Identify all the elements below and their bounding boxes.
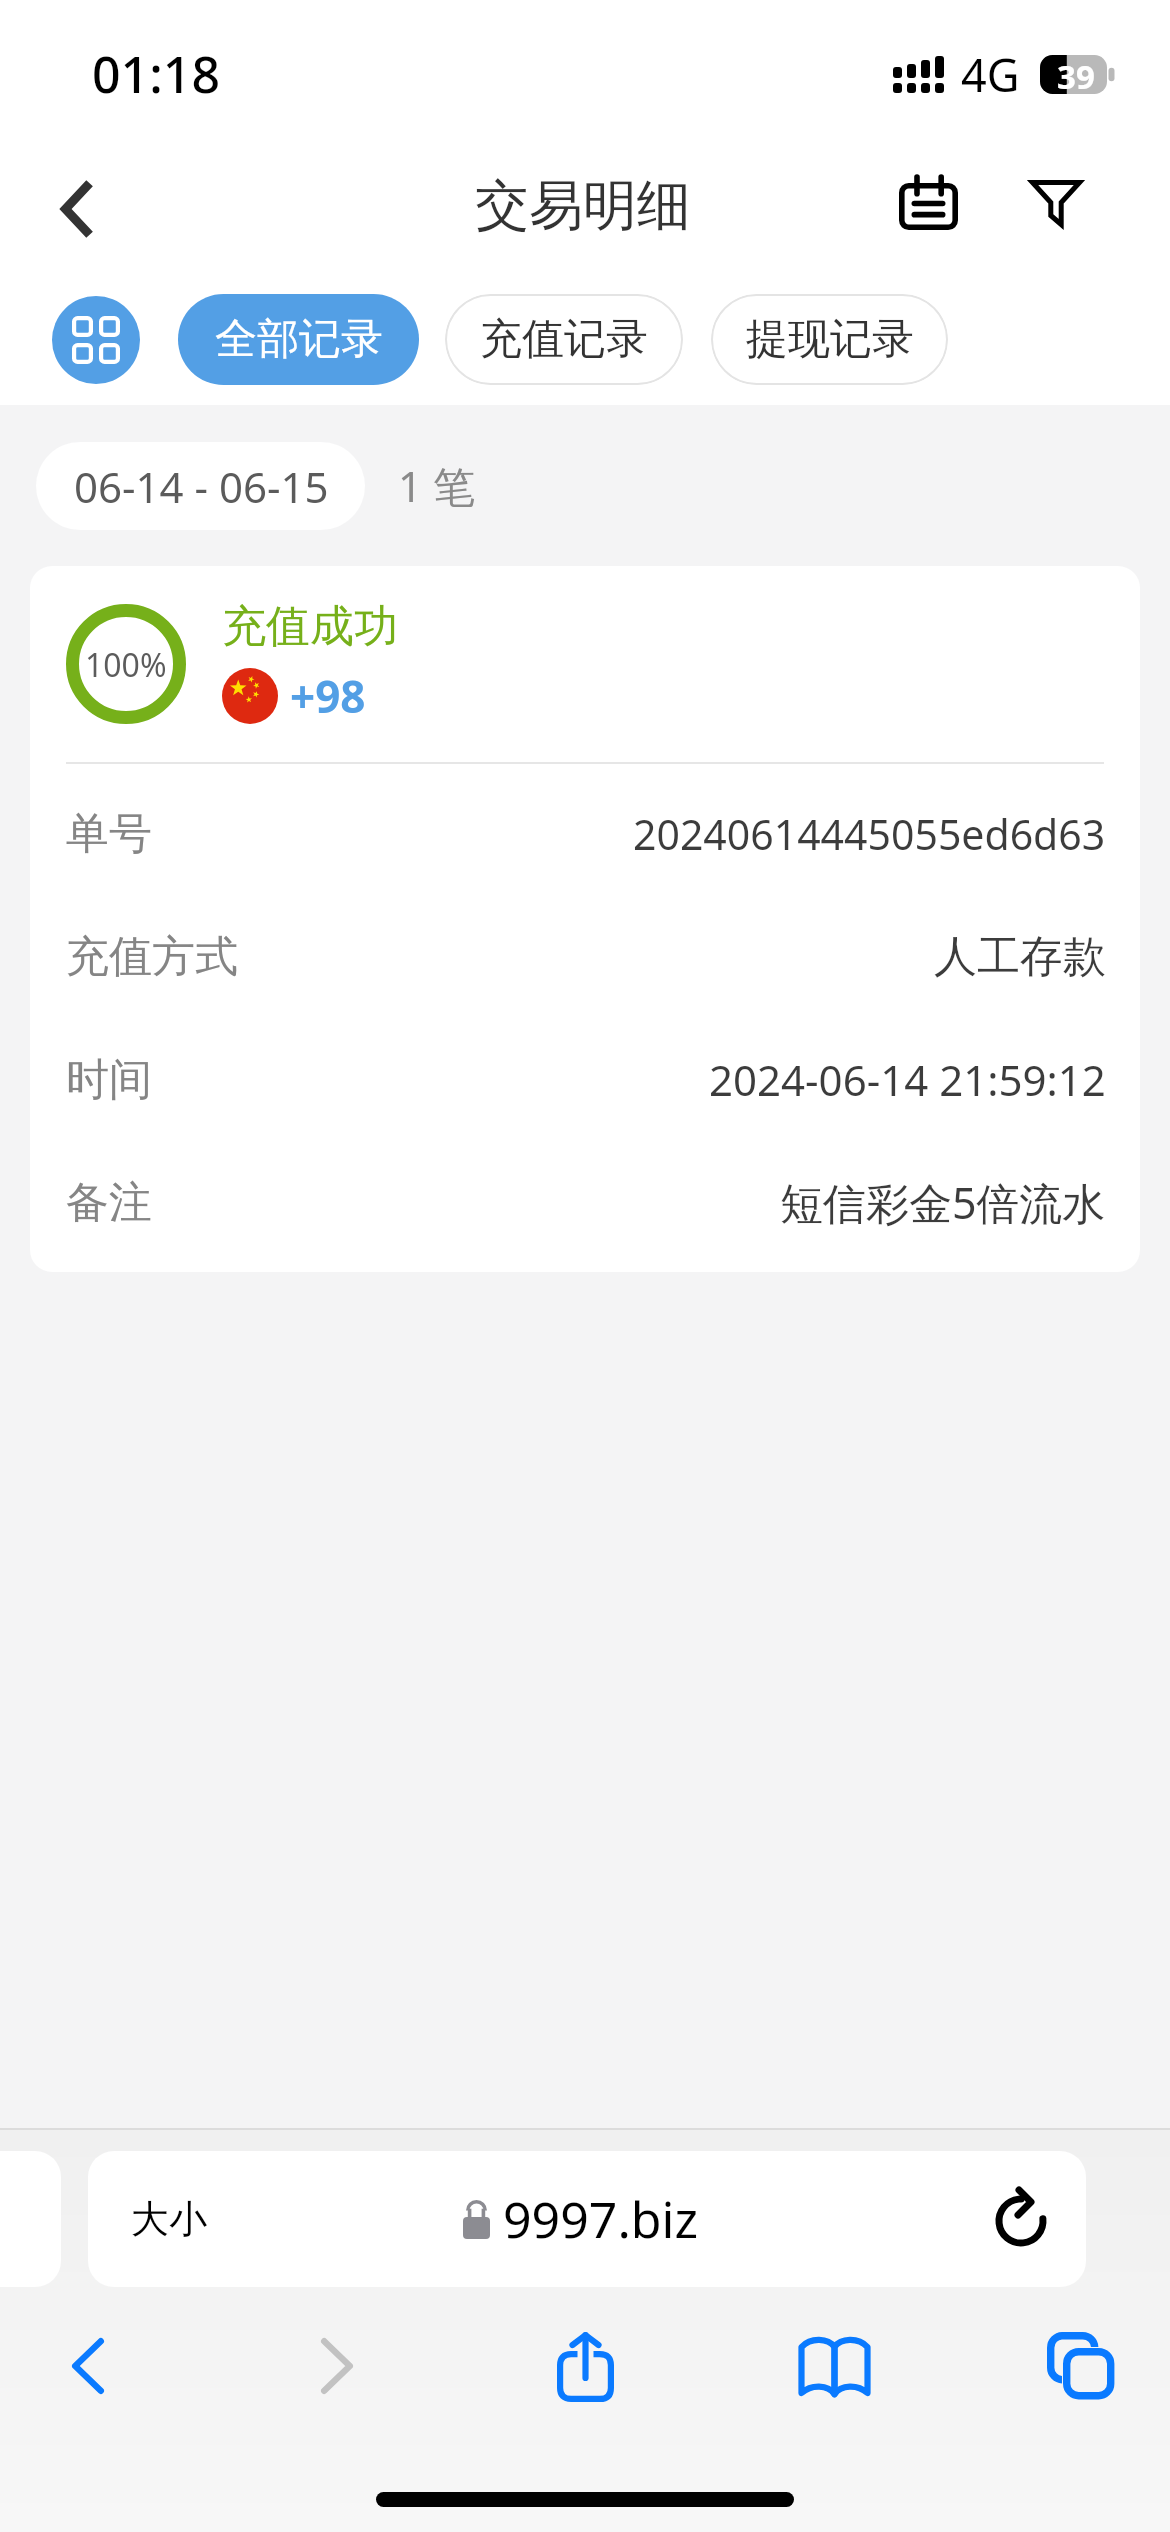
button[interactable]: Tabs: [1002, 2311, 1162, 2421]
button[interactable]: Back: [0, 133, 150, 273]
staticText: 2024-06-14 21:59:12: [709, 1051, 1106, 1108]
staticText: 提现记录: [746, 313, 914, 366]
staticText: 1 笔: [398, 457, 475, 514]
button[interactable]: 提现记录: [711, 294, 948, 385]
staticText: 39: [1057, 54, 1095, 93]
staticText: 时间: [66, 1053, 152, 1107]
button[interactable]: 全部记录: [178, 294, 419, 385]
staticText: 全部记录: [215, 313, 383, 366]
button[interactable]: Records: [866, 133, 990, 273]
button[interactable]: Share: [505, 2311, 665, 2421]
staticText: 单号: [66, 807, 152, 861]
button[interactable]: 06-14 - 06-15: [36, 442, 365, 530]
staticText: 充值记录: [480, 313, 648, 366]
staticText: 100%: [85, 643, 167, 687]
staticText: 大小: [131, 2195, 207, 2243]
staticText: 人工存款: [934, 930, 1106, 984]
staticText: 短信彩金5倍流水: [780, 1173, 1106, 1232]
staticText: 20240614445055ed6d63: [633, 806, 1106, 862]
button[interactable]: Forward: [257, 2311, 417, 2421]
button[interactable]: 100%: [30, 566, 1140, 1272]
staticText: 备注: [66, 1176, 152, 1230]
button[interactable]: Back: [8, 2311, 168, 2421]
button[interactable]: Filter: [990, 133, 1122, 273]
button[interactable]: All categories: [52, 296, 140, 384]
button[interactable]: 大小: [88, 2151, 1086, 2287]
staticText: 充值成功: [222, 599, 398, 654]
button[interactable]: Bookmarks: [754, 2311, 914, 2421]
staticText: 06-14 - 06-15: [74, 458, 329, 515]
staticText: +98: [290, 666, 366, 726]
staticText: 交易明细: [475, 172, 691, 240]
staticText: 4G: [961, 44, 1020, 105]
staticText: 01:18: [92, 40, 220, 108]
staticText: 充值方式: [66, 930, 238, 984]
button[interactable]: 充值记录: [445, 294, 683, 385]
staticText: 9997.biz: [503, 2185, 698, 2253]
